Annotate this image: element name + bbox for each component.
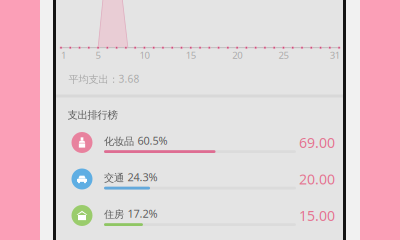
staticText: 平均支出：3.68: [68, 72, 139, 86]
button[interactable]: 住房: [56, 197, 343, 234]
staticText: 交通: [104, 171, 124, 184]
staticText: 17.2%: [127, 206, 157, 221]
staticText: 69.00: [299, 133, 335, 152]
staticText: 25: [278, 48, 288, 62]
staticText: 支出排行榜: [67, 108, 117, 122]
staticText: 60.5%: [137, 133, 167, 148]
staticText: 住房: [104, 208, 124, 221]
staticText: 24.3%: [127, 170, 157, 184]
staticText: 5: [96, 48, 101, 62]
staticText: 15.00: [299, 206, 335, 225]
staticText: 20: [232, 48, 242, 62]
staticText: 20.00: [299, 169, 335, 189]
staticText: 31: [330, 48, 340, 62]
staticText: 15: [186, 48, 196, 62]
staticText: 化妆品: [104, 135, 134, 148]
staticText: 1: [61, 48, 66, 62]
button[interactable]: 化妆品: [56, 124, 343, 161]
staticText: 10: [139, 48, 149, 62]
button[interactable]: 交通: [56, 161, 343, 197]
